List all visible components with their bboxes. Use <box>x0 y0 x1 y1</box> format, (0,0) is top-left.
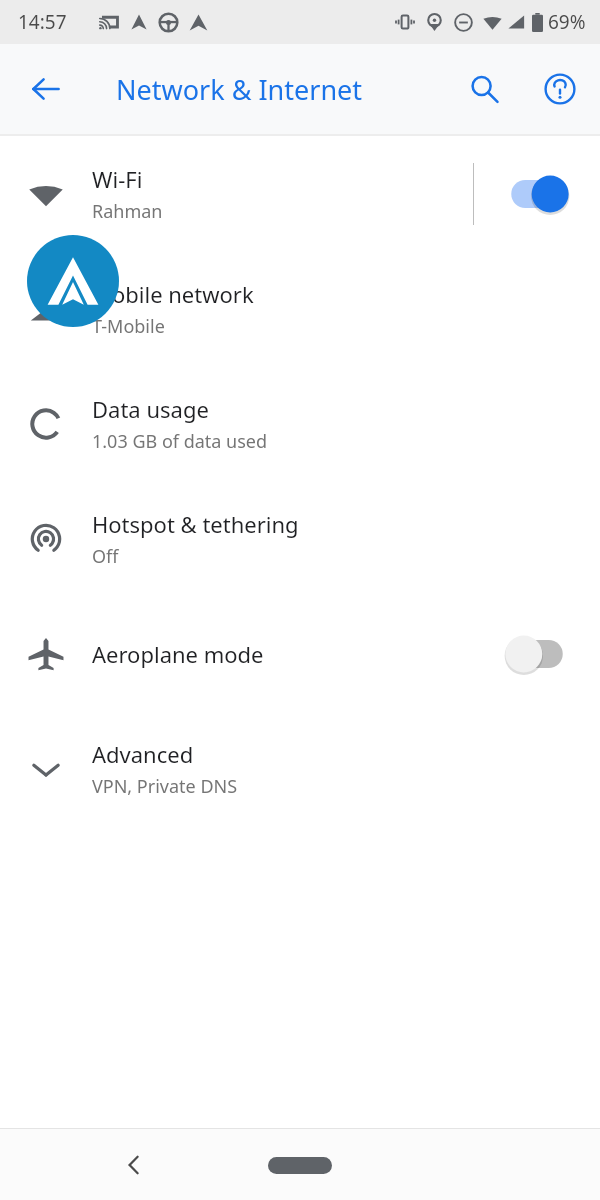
button[interactable]: Home <box>260 1139 340 1191</box>
staticText: Rahman <box>92 199 163 224</box>
button[interactable]: Android Auto <box>27 235 119 327</box>
staticText: Off <box>92 544 119 569</box>
button[interactable]: Mobile network <box>0 251 600 366</box>
button[interactable]: Help <box>534 63 586 115</box>
staticText: 1.03 GB of data used <box>92 429 268 454</box>
button[interactable]: Wi-Fi on <box>474 136 600 251</box>
button[interactable]: Wi-Fi <box>0 136 600 251</box>
button[interactable]: Search <box>458 63 510 115</box>
staticText: Hotspot & tethering <box>92 509 299 539</box>
staticText: Network & Internet <box>116 71 363 108</box>
button[interactable]: Advanced <box>0 711 600 826</box>
button[interactable]: Hotspot & tethering <box>0 481 600 596</box>
button[interactable]: Back <box>22 65 70 113</box>
button[interactable]: Aeroplane mode off <box>474 596 600 711</box>
staticText: VPN, Private DNS <box>92 774 238 799</box>
staticText: Data usage <box>92 394 209 424</box>
staticText: 69% <box>548 9 586 35</box>
staticText: 14:57 <box>18 9 67 35</box>
button[interactable]: Back <box>108 1139 160 1191</box>
staticText: T-Mobile <box>92 314 165 339</box>
button[interactable]: Aeroplane mode <box>0 596 600 711</box>
staticText: Aeroplane mode <box>92 639 264 669</box>
staticText: Advanced <box>92 739 194 769</box>
staticText: Wi-Fi <box>92 164 143 194</box>
button[interactable]: Data usage <box>0 366 600 481</box>
staticText: Mobile network <box>92 279 254 309</box>
